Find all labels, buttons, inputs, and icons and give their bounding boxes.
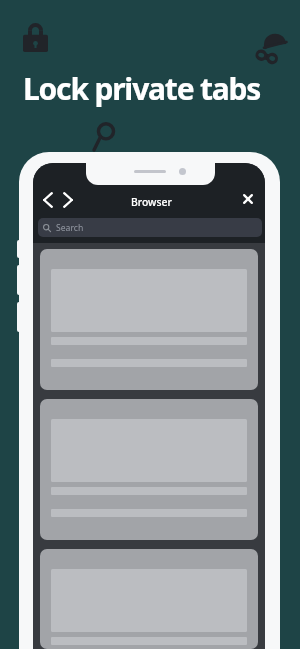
button[interactable] xyxy=(40,549,258,649)
staticText: Lock private tabs xyxy=(23,68,261,109)
button[interactable] xyxy=(40,249,258,390)
button[interactable]: Close xyxy=(238,187,258,211)
other: Incognito xyxy=(255,33,286,63)
staticText: Search xyxy=(56,222,84,234)
button[interactable]: Back xyxy=(38,188,58,212)
other: Search xyxy=(92,120,116,152)
button[interactable]: Search xyxy=(38,218,262,237)
other: Private lock xyxy=(23,23,48,52)
staticText: Browser xyxy=(131,195,172,209)
button[interactable]: Forward xyxy=(58,188,78,212)
button[interactable] xyxy=(40,399,258,540)
